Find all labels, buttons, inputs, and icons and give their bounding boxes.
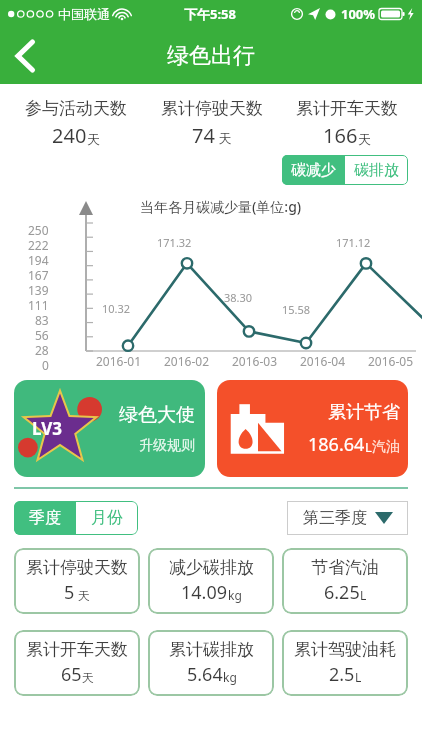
- staticText: 2016-04: [300, 353, 346, 369]
- staticText: 14.09: [181, 580, 228, 605]
- button[interactable]: 减少碳排放: [148, 548, 274, 614]
- button[interactable]: 绿色大使: [14, 380, 205, 477]
- staticText: 累计停驶天数: [26, 557, 128, 578]
- staticText: 2016-02: [164, 353, 210, 369]
- staticText: L: [355, 669, 362, 685]
- staticText: 2016-05: [368, 353, 414, 369]
- staticText: 累计开车天数: [296, 98, 398, 119]
- staticText: 65: [61, 662, 82, 687]
- staticText: LV3: [32, 417, 62, 440]
- staticText: 累计碳排放: [169, 639, 254, 660]
- staticText: 38.30: [224, 290, 253, 305]
- button[interactable]: 第三季度: [287, 501, 408, 535]
- staticText: 绿色大使: [119, 403, 195, 427]
- staticText: 0: [42, 357, 49, 370]
- staticText: 累计停驶天数: [161, 98, 263, 119]
- staticText: 166: [323, 122, 358, 149]
- staticText: L: [360, 587, 367, 603]
- staticText: 季度: [29, 508, 61, 528]
- button[interactable]: 碳排放: [345, 155, 408, 185]
- staticText: 10.32: [102, 301, 131, 316]
- staticText: 第三季度: [303, 508, 367, 528]
- staticText: 240: [52, 122, 87, 149]
- staticText: 2016-03: [232, 353, 278, 369]
- button[interactable]: 季度: [14, 501, 76, 535]
- staticText: 139: [28, 282, 49, 297]
- button[interactable]: 累计开车天数: [279, 98, 414, 149]
- button[interactable]: 节省汽油: [282, 548, 408, 614]
- staticText: 下午5:58: [184, 5, 236, 23]
- button[interactable]: 累计碳排放: [148, 630, 274, 696]
- staticText: kg: [228, 587, 242, 603]
- staticText: 194: [28, 252, 49, 267]
- staticText: 222: [28, 237, 49, 252]
- button[interactable]: 累计停驶天数: [144, 98, 279, 149]
- button[interactable]: 累计停驶天数: [14, 548, 140, 614]
- staticText: 当年各月碳减少量(单位:g): [140, 197, 302, 216]
- staticText: 15.58: [282, 302, 311, 317]
- staticText: kg: [223, 669, 237, 685]
- staticText: 250: [28, 222, 49, 237]
- staticText: 2016-01: [96, 353, 142, 369]
- staticText: 74: [192, 122, 215, 149]
- button[interactable]: 累计驾驶油耗: [282, 630, 408, 696]
- staticText: 节省汽油: [311, 557, 379, 578]
- staticText: 参与活动天数: [25, 98, 127, 119]
- staticText: 28: [35, 342, 49, 357]
- staticText: 天: [75, 587, 91, 603]
- staticText: 月份: [91, 508, 123, 528]
- staticText: 碳减少: [291, 161, 336, 180]
- staticText: 天: [82, 670, 94, 685]
- staticText: 56: [35, 327, 49, 342]
- staticText: L: [365, 438, 372, 456]
- button[interactable]: Back: [0, 30, 52, 82]
- staticText: 186.64: [308, 432, 365, 457]
- staticText: 汽油: [372, 438, 400, 456]
- staticText: 5.64: [187, 662, 223, 687]
- staticText: 171.12: [336, 235, 371, 250]
- staticText: 天: [87, 131, 100, 147]
- staticText: 111: [28, 297, 49, 312]
- button[interactable]: 参与活动天数: [8, 98, 144, 149]
- staticText: 6.25: [324, 580, 360, 605]
- staticText: 167: [28, 267, 49, 282]
- staticText: 累计节省: [328, 401, 400, 424]
- button[interactable]: 累计节省: [217, 380, 408, 477]
- staticText: 83: [35, 312, 49, 327]
- staticText: 171.32: [157, 235, 192, 250]
- staticText: 100%: [341, 5, 376, 23]
- staticText: 累计开车天数: [26, 639, 128, 660]
- button[interactable]: 碳减少: [282, 155, 345, 185]
- button[interactable]: 累计开车天数: [14, 630, 140, 696]
- staticText: 升级规则: [139, 437, 195, 455]
- staticText: 累计驾驶油耗: [294, 639, 396, 660]
- staticText: 绿色出行: [167, 42, 255, 70]
- button[interactable]: 月份: [76, 501, 138, 535]
- staticText: 2.5: [329, 662, 355, 687]
- staticText: 中国联通: [58, 6, 110, 22]
- staticText: 天: [358, 131, 371, 147]
- staticText: 碳排放: [354, 161, 399, 180]
- staticText: 5: [64, 580, 75, 605]
- staticText: 减少碳排放: [169, 557, 254, 578]
- staticText: 天: [215, 129, 232, 147]
